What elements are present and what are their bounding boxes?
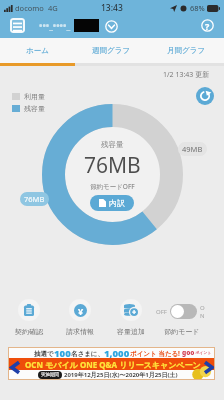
button[interactable]: 容量追加 [105, 299, 156, 336]
staticText: 49MB [182, 144, 203, 154]
staticText: 1/2 13:43 更新 [163, 70, 210, 80]
staticText: 残容量 [24, 104, 45, 113]
staticText: 4G [48, 3, 58, 13]
staticText: 節約モードOFF [90, 182, 135, 191]
staticText: 週間グラフ [92, 46, 131, 55]
staticText: 2019年12月25日(水)〜2020年1月25日(土) [64, 371, 178, 379]
button[interactable]: Help [201, 19, 214, 32]
staticText: 抽選で [34, 350, 54, 358]
staticText: 76MB [24, 194, 45, 204]
button[interactable]: 契約確認 [4, 299, 54, 336]
staticText: goo [182, 348, 195, 357]
staticText: ポイント [195, 350, 212, 355]
staticText: docomo [15, 3, 44, 13]
staticText: ON [200, 304, 207, 320]
staticText: ¥ [78, 305, 84, 317]
staticText: 100 [54, 347, 71, 358]
staticText: 節約モード [164, 327, 200, 336]
button[interactable]: 週間グラフ [74, 38, 149, 63]
staticText: 76MB [84, 151, 141, 180]
button[interactable]: 抽選で [8, 347, 215, 380]
staticText: 契約確認 [15, 327, 43, 336]
staticText: 13:43 [101, 2, 123, 14]
staticText: ホーム [26, 46, 49, 55]
staticText: OFF [156, 308, 167, 316]
staticText: 請求情報 [66, 327, 94, 336]
staticText: 残容量 [101, 140, 124, 149]
staticText: 68% [190, 3, 205, 13]
staticText: •••_••••_ [39, 19, 71, 31]
button[interactable]: ホーム [0, 38, 74, 63]
staticText: 利用量 [24, 92, 45, 101]
staticText: ? [205, 20, 210, 32]
button[interactable]: ¥ [54, 299, 105, 336]
staticText: 実施期間 [41, 372, 59, 378]
button[interactable]: Menu [10, 18, 25, 33]
staticText: 内訳 [109, 198, 125, 208]
staticText: 名さまに、 [71, 350, 104, 358]
staticText: 容量追加 [117, 327, 145, 336]
button[interactable]: Refresh [196, 87, 214, 105]
button[interactable]: OFF [156, 299, 207, 336]
button[interactable]: 月間グラフ [149, 38, 224, 63]
staticText: ポイント 当たる! [130, 349, 180, 358]
button[interactable]: Expand account [105, 20, 118, 33]
staticText: 月間グラフ [167, 46, 206, 55]
staticText: OCN モバイル ONE Q&A リリースキャンペーン [25, 359, 201, 370]
staticText: 1,000 [104, 347, 130, 358]
button[interactable]: 内訳 [90, 195, 134, 211]
